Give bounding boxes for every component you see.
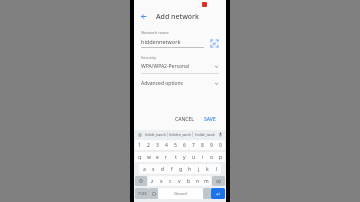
button[interactable]: x <box>157 176 166 186</box>
staticText: h <box>188 166 192 173</box>
staticText: 9 <box>210 142 213 149</box>
staticText: k <box>206 166 209 173</box>
button[interactable]: 5 <box>171 140 180 150</box>
button[interactable]: g <box>176 164 185 174</box>
button[interactable]: i <box>198 152 207 162</box>
staticText: Network name <box>141 30 169 35</box>
staticText: d <box>161 166 165 173</box>
staticText: p <box>219 154 223 161</box>
staticText: Advanced options <box>141 80 214 87</box>
button[interactable]: s <box>149 164 158 174</box>
button[interactable]: f <box>167 164 176 174</box>
button[interactable]: 0 <box>216 140 225 150</box>
staticText: y <box>183 154 186 161</box>
button[interactable]: Space <box>158 188 203 199</box>
staticText: hidde_twok <box>195 132 215 137</box>
staticText: hidden_work <box>169 132 191 137</box>
button[interactable]: z <box>148 176 157 186</box>
button[interactable]: 9 <box>207 140 216 150</box>
button[interactable]: a <box>139 164 149 174</box>
button[interactable]: 4 <box>162 140 171 150</box>
staticText: 1 <box>138 142 141 149</box>
button[interactable]: Emoji <box>149 188 158 199</box>
button[interactable]: d <box>158 164 167 174</box>
button[interactable]: 8 <box>198 140 207 150</box>
staticText: CANCEL <box>175 116 194 123</box>
button[interactable]: SAVE <box>201 114 219 125</box>
staticText: c <box>169 178 172 185</box>
staticText: 0 <box>219 142 222 149</box>
staticText: b <box>187 178 191 185</box>
button[interactable]: 2 <box>144 140 153 150</box>
staticText: i <box>202 154 204 161</box>
button[interactable]: 3 <box>153 140 162 150</box>
staticText: Gboard <box>174 191 187 196</box>
staticText: 4 <box>165 142 168 149</box>
staticText: . <box>206 190 208 197</box>
button[interactable]: t <box>171 152 180 162</box>
button[interactable]: u <box>189 152 198 162</box>
button[interactable]: 6 <box>180 140 189 150</box>
button[interactable]: y <box>180 152 189 162</box>
staticText: l <box>216 166 218 173</box>
staticText: q <box>138 154 142 161</box>
staticText: a <box>143 166 146 173</box>
staticText: SAVE <box>204 116 216 123</box>
staticText: 5 <box>174 142 177 149</box>
staticText: hiddennetwork <box>141 38 181 45</box>
button[interactable]: Enter <box>211 188 225 199</box>
button[interactable]: hidden_work <box>168 132 192 137</box>
button[interactable]: n <box>193 176 202 186</box>
staticText: j <box>198 166 200 173</box>
staticText: WPA/WPA2-Personal <box>141 63 214 70</box>
staticText: 2 <box>147 142 150 149</box>
staticText: t <box>175 154 177 161</box>
staticText: s <box>152 166 155 173</box>
button[interactable]: l <box>212 164 221 174</box>
button[interactable]: m <box>202 176 211 186</box>
staticText: n <box>196 178 200 185</box>
button[interactable]: 7 <box>189 140 198 150</box>
button[interactable]: hiddennetwork <box>141 38 204 48</box>
button[interactable]: ?123 <box>135 188 149 199</box>
staticText: z <box>151 178 154 185</box>
staticText: 7 <box>192 142 195 149</box>
button[interactable]: Advanced options <box>141 80 219 87</box>
button[interactable]: Backspace <box>212 176 225 186</box>
staticText: f <box>171 166 173 173</box>
button[interactable]: CANCEL <box>172 114 197 125</box>
button[interactable]: o <box>207 152 216 162</box>
staticText: r <box>165 154 168 161</box>
button[interactable]: e <box>153 152 162 162</box>
staticText: 6 <box>183 142 186 149</box>
staticText: x <box>160 178 163 185</box>
button[interactable]: r <box>162 152 171 162</box>
button[interactable]: q <box>135 152 144 162</box>
staticText: 3 <box>156 142 159 149</box>
button[interactable]: Shift <box>135 176 147 186</box>
button[interactable]: Voice input <box>217 131 224 138</box>
button[interactable]: hidde_twok <box>193 132 217 137</box>
button[interactable]: c <box>166 176 175 186</box>
staticText: v <box>178 178 181 185</box>
staticText: g <box>179 166 183 173</box>
button[interactable]: j <box>194 164 203 174</box>
staticText: w <box>147 154 151 161</box>
button[interactable]: Back <box>139 11 150 22</box>
staticText: Add network <box>156 12 199 22</box>
button[interactable]: k <box>203 164 212 174</box>
button[interactable]: h <box>185 164 194 174</box>
staticText: ?123 <box>138 191 147 196</box>
button[interactable]: b <box>184 176 193 186</box>
button[interactable]: p <box>216 152 225 162</box>
button[interactable]: 1 <box>135 140 144 150</box>
button[interactable]: Keyboard settings <box>136 131 143 138</box>
button[interactable]: Scan QR code <box>209 38 219 48</box>
button[interactable]: WPA/WPA2-Personal <box>141 63 219 70</box>
button[interactable]: hidde_twork <box>143 132 167 137</box>
button[interactable]: v <box>175 176 184 186</box>
button[interactable]: w <box>144 152 153 162</box>
staticText: hidde_twork <box>145 132 166 137</box>
staticText: m <box>204 178 209 185</box>
button[interactable]: . <box>203 188 211 199</box>
